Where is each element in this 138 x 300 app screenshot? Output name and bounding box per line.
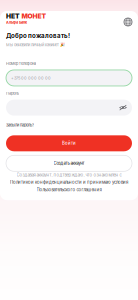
staticText: Альфа Банк bbox=[6, 20, 27, 25]
button[interactable]: Show password bbox=[119, 105, 127, 111]
staticText: Мы обновили личный кабинет 🎉 bbox=[6, 42, 65, 47]
staticText: МОНЕТ bbox=[21, 12, 46, 20]
staticText: Политикой конфиденциальности и принимаю … bbox=[10, 180, 128, 185]
button[interactable]: Change language bbox=[124, 18, 132, 26]
staticText: НЕТ bbox=[6, 12, 20, 20]
staticText: Пользовательского соглашения bbox=[36, 187, 101, 192]
staticText: Забыли пароль? bbox=[6, 123, 34, 127]
staticText: +375 00 000 00 00 bbox=[11, 75, 51, 80]
staticText: Номер телефона bbox=[6, 61, 36, 66]
button[interactable]: Забыли пароль? bbox=[6, 123, 34, 127]
staticText: Добро пожаловать! bbox=[6, 32, 70, 39]
button[interactable]: Создать аккаунт bbox=[6, 155, 132, 171]
staticText: Войти bbox=[62, 141, 76, 146]
button[interactable]: Пользовательского соглашения bbox=[36, 187, 101, 192]
button[interactable]: Войти bbox=[6, 135, 132, 151]
staticText: Создать аккаунт bbox=[53, 161, 84, 166]
staticText: Создавая аккаунт, подтверждаю, что ознак… bbox=[16, 172, 121, 177]
staticText: Пароль bbox=[6, 91, 19, 96]
button[interactable]: Политикой конфиденциальности и принимаю … bbox=[10, 180, 128, 185]
